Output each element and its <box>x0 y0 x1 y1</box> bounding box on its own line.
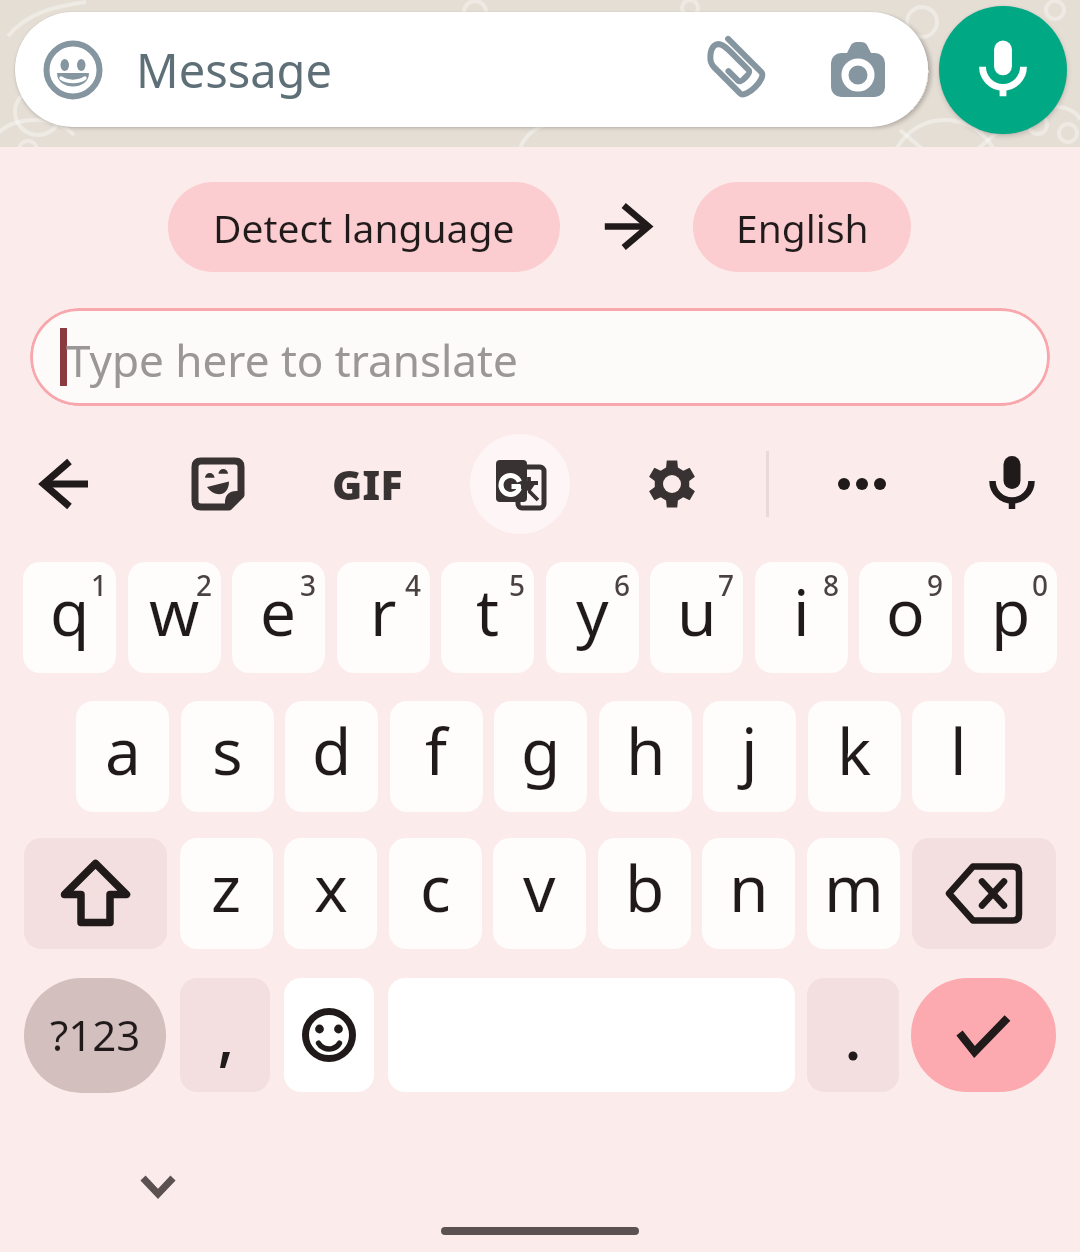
staticText: 7 <box>718 566 735 604</box>
button[interactable]: Voice message <box>939 6 1067 134</box>
button[interactable]: o <box>859 562 952 673</box>
staticText: ?123 <box>50 1006 141 1063</box>
button[interactable]: f <box>390 701 483 812</box>
staticText: 0 <box>1032 566 1049 604</box>
button[interactable]: Backspace <box>912 838 1056 949</box>
staticText: z <box>211 844 242 931</box>
staticText: m <box>824 844 884 931</box>
button[interactable]: t <box>441 562 534 673</box>
button[interactable]: Comma <box>180 978 270 1092</box>
staticText: i <box>793 568 810 655</box>
button[interactable]: a <box>76 701 169 812</box>
staticText: q <box>50 568 90 655</box>
button[interactable]: Enter <box>911 978 1056 1092</box>
button[interactable]: GIF <box>317 434 417 534</box>
button[interactable]: q <box>23 562 116 673</box>
staticText: n <box>729 844 769 931</box>
staticText: Message <box>136 38 332 102</box>
button[interactable]: ?123 <box>24 978 166 1093</box>
button[interactable]: k <box>808 701 901 812</box>
button[interactable]: Attach <box>690 22 786 118</box>
button[interactable]: z <box>180 838 273 949</box>
staticText: f <box>425 707 448 794</box>
button[interactable]: Translate <box>470 434 570 534</box>
button[interactable]: Emoji <box>284 978 374 1092</box>
button[interactable]: u <box>650 562 743 673</box>
staticText: k <box>837 707 872 794</box>
button[interactable]: v <box>493 838 586 949</box>
button[interactable]: Shift <box>24 838 167 949</box>
button[interactable]: l <box>912 701 1005 812</box>
staticText: 2 <box>196 566 213 604</box>
staticText: Detect language <box>213 201 515 254</box>
button[interactable]: Type here to translate <box>30 308 1050 406</box>
staticText: English <box>736 201 869 254</box>
button[interactable]: d <box>285 701 378 812</box>
button[interactable]: x <box>284 838 377 949</box>
button[interactable]: Voice input <box>962 434 1062 534</box>
button[interactable]: b <box>598 838 691 949</box>
staticText: t <box>476 568 500 655</box>
staticText: l <box>950 707 967 794</box>
button[interactable]: Stickers <box>168 434 268 534</box>
staticText: GIF <box>332 456 403 512</box>
button[interactable]: n <box>702 838 795 949</box>
button[interactable]: Period <box>807 978 899 1092</box>
button[interactable]: s <box>181 701 274 812</box>
button[interactable]: i <box>755 562 848 673</box>
button[interactable]: h <box>599 701 692 812</box>
staticText: x <box>314 844 348 931</box>
button[interactable]: Detect language <box>168 182 560 272</box>
staticText: 9 <box>927 566 944 604</box>
staticText: Type here to translate <box>66 330 518 390</box>
button[interactable]: g <box>494 701 587 812</box>
button[interactable]: c <box>389 838 482 949</box>
staticText: j <box>741 707 758 794</box>
staticText: r <box>370 568 397 655</box>
staticText: y <box>576 568 609 655</box>
button[interactable]: p <box>964 562 1057 673</box>
staticText: u <box>677 568 717 655</box>
staticText: 6 <box>614 566 631 604</box>
staticText: 5 <box>509 566 526 604</box>
button[interactable]: e <box>232 562 325 673</box>
staticText: v <box>523 844 556 931</box>
staticText: e <box>260 568 297 655</box>
button[interactable]: More options <box>812 434 912 534</box>
staticText: g <box>521 707 561 794</box>
button[interactable]: r <box>337 562 430 673</box>
button[interactable]: Hide keyboard <box>118 1146 198 1226</box>
staticText: 4 <box>405 566 422 604</box>
staticText: p <box>991 568 1031 655</box>
button[interactable]: English <box>693 182 911 272</box>
button[interactable]: j <box>703 701 796 812</box>
button[interactable]: Camera <box>810 22 906 118</box>
staticText: c <box>420 844 451 931</box>
button[interactable]: Back <box>16 434 116 534</box>
staticText: 8 <box>823 566 840 604</box>
staticText: 1 <box>91 566 108 604</box>
staticText: s <box>212 707 243 794</box>
button[interactable]: Message <box>15 12 928 127</box>
staticText: a <box>105 707 141 794</box>
button[interactable]: y <box>546 562 639 673</box>
staticText: o <box>886 568 925 655</box>
staticText: 3 <box>300 566 317 604</box>
staticText: d <box>312 707 352 794</box>
button[interactable]: w <box>128 562 221 673</box>
button[interactable]: Settings <box>622 434 722 534</box>
staticText: h <box>626 707 666 794</box>
staticText: b <box>625 844 665 931</box>
staticText: w <box>149 568 200 655</box>
button[interactable]: m <box>807 838 900 949</box>
